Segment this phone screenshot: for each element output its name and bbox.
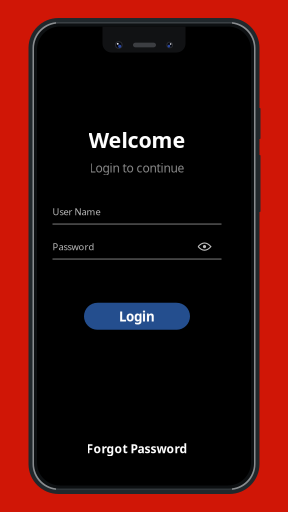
staticText: Forgot Password: [86, 441, 187, 456]
staticText: Password: [52, 240, 94, 253]
button[interactable]: Password: [52, 238, 221, 260]
button[interactable]: Forgot Password: [86, 441, 187, 456]
staticText: Login to continue: [89, 160, 184, 176]
staticText: Welcome: [88, 125, 185, 154]
button[interactable]: Login: [84, 303, 190, 330]
button[interactable]: User Name: [52, 203, 221, 225]
staticText: User Name: [52, 205, 100, 218]
staticText: Login: [119, 307, 155, 325]
